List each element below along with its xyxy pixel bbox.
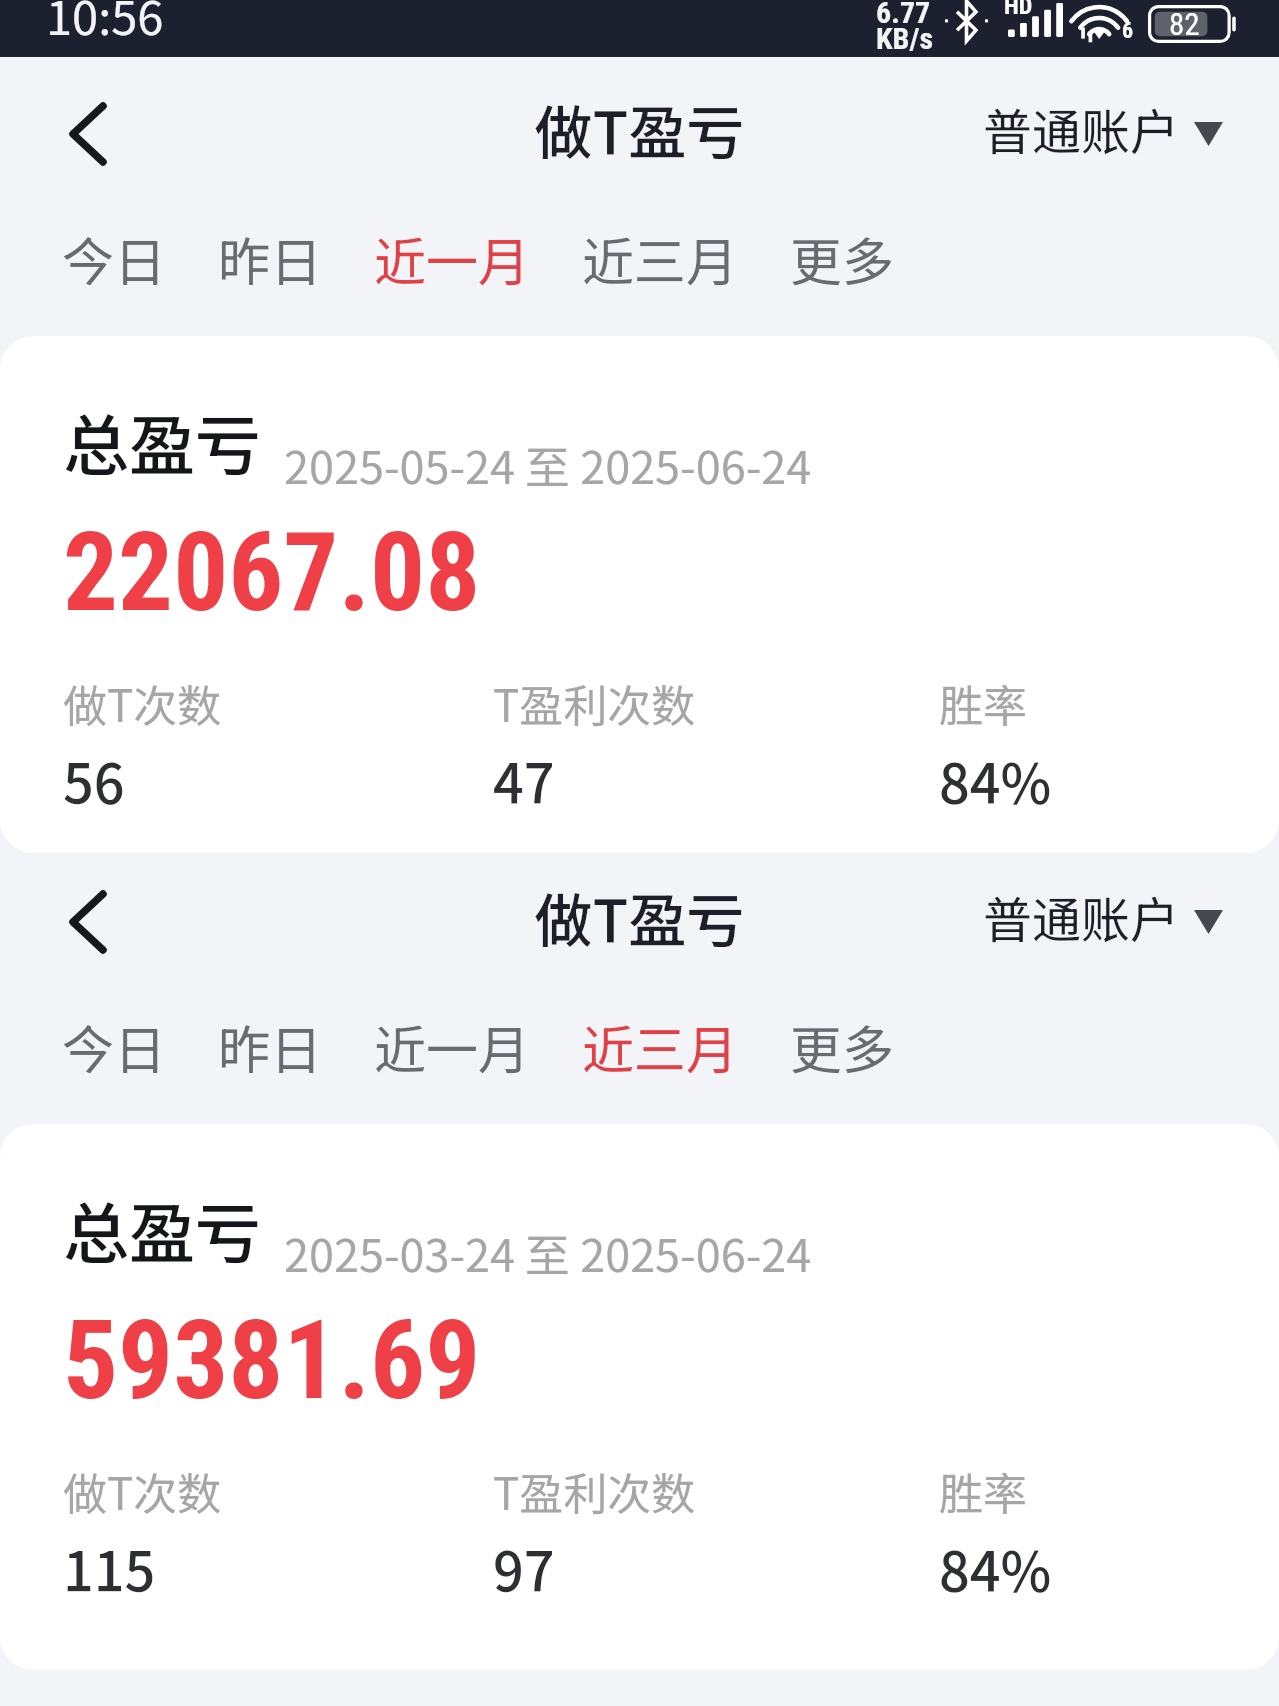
staticText: 47	[493, 741, 555, 819]
staticText: 近三月	[582, 1009, 739, 1084]
button[interactable]: 更多	[764, 986, 921, 1107]
staticText: 22067.08	[63, 509, 481, 637]
staticText: 今日	[62, 1009, 167, 1084]
button[interactable]: 今日	[36, 986, 192, 1107]
staticText: T盈利次数	[493, 671, 696, 735]
staticText: 更多	[790, 1009, 895, 1084]
staticText: 更多	[790, 221, 895, 296]
staticText: 2025-03-24 至 2025-06-24	[284, 1220, 812, 1285]
staticText: 115	[63, 1529, 156, 1607]
staticText: 10:56	[46, 0, 164, 37]
staticText: 昨日	[218, 221, 323, 296]
button[interactable]: 今日	[36, 198, 192, 319]
button[interactable]: 昨日	[192, 986, 348, 1107]
button[interactable]: 近一月	[348, 986, 556, 1107]
staticText: 胜率	[939, 671, 1027, 735]
staticText: 近一月	[374, 1009, 531, 1084]
button[interactable]: Back	[42, 876, 134, 968]
button[interactable]: 胜率	[939, 1459, 1052, 1607]
staticText: 昨日	[218, 1009, 323, 1084]
button[interactable]: 胜率	[939, 671, 1052, 819]
button[interactable]: 普通账户	[963, 85, 1279, 172]
button[interactable]: T盈利次数	[493, 671, 939, 819]
button[interactable]: 普通账户	[963, 873, 1279, 960]
button[interactable]: Back	[42, 88, 134, 180]
staticText: 近一月	[374, 221, 531, 296]
staticText: 胜率	[939, 1459, 1027, 1523]
staticText: 做T盈亏	[0, 87, 1279, 171]
staticText: 做T次数	[63, 1459, 222, 1523]
staticText: 总盈亏	[63, 393, 261, 489]
button[interactable]: 更多	[764, 198, 921, 319]
button[interactable]: 近三月	[556, 198, 764, 319]
button[interactable]: T盈利次数	[493, 1459, 939, 1607]
staticText: 84%	[939, 1529, 1052, 1607]
staticText: 普通账户	[983, 93, 1180, 164]
staticText: 2025-05-24 至 2025-06-24	[284, 432, 812, 497]
staticText: 82	[1169, 6, 1200, 42]
staticText: 56	[63, 741, 125, 819]
staticText: 6	[1122, 18, 1134, 44]
button[interactable]: 昨日	[192, 198, 348, 319]
button[interactable]: 做T次数	[63, 1459, 493, 1607]
staticText: 近三月	[582, 221, 739, 296]
staticText: 84%	[939, 741, 1052, 819]
staticText: 总盈亏	[63, 1181, 261, 1277]
staticText: T盈利次数	[493, 1459, 696, 1523]
button[interactable]: 近一月	[348, 198, 556, 319]
staticText: 6.77 KB/s	[876, 0, 934, 52]
button[interactable]: 做T次数	[63, 671, 493, 819]
staticText: 97	[493, 1529, 555, 1607]
staticText: 59381.69	[63, 1297, 481, 1425]
staticText: HD	[1004, 0, 1033, 20]
staticText: 今日	[62, 221, 167, 296]
staticText: 做T盈亏	[0, 875, 1279, 959]
staticText: 普通账户	[983, 881, 1180, 952]
staticText: 做T次数	[63, 671, 222, 735]
button[interactable]: 近三月	[556, 986, 764, 1107]
